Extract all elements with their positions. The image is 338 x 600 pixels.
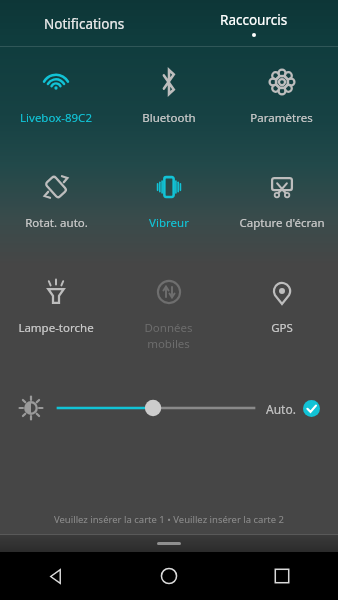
button[interactable]: GPS — [225, 257, 338, 362]
button[interactable]: Rotat. auto. — [0, 152, 112, 257]
button[interactable]: Bluetooth — [112, 47, 225, 152]
button[interactable]: Back — [0, 552, 112, 600]
button[interactable]: Notifications — [0, 0, 169, 47]
staticText: Rotat. auto. — [25, 215, 88, 231]
staticText: Bluetooth — [142, 110, 196, 126]
staticText: Auto. — [266, 401, 296, 417]
button[interactable]: Données mobiles — [112, 257, 225, 362]
staticText: Données mobiles — [144, 320, 193, 351]
staticText: Livebox-89C2 — [20, 110, 92, 126]
button[interactable]: Capture d'écran — [225, 152, 338, 257]
button[interactable]: Home — [112, 552, 225, 600]
staticText: Paramètres — [250, 110, 313, 126]
staticText: Raccourcis — [220, 11, 288, 29]
staticText: Veuillez insérer la carte 1 • Veuillez i… — [54, 513, 285, 526]
button[interactable]: Livebox-89C2 — [0, 47, 112, 152]
staticText: Vibreur — [149, 215, 189, 231]
button[interactable]: Auto. — [266, 400, 320, 417]
button[interactable]: Paramètres — [225, 47, 338, 152]
button[interactable]: Raccourcis — [169, 0, 338, 47]
button[interactable]: Recent apps — [225, 552, 338, 600]
button[interactable]: Lampe-torche — [0, 257, 112, 362]
staticText: Capture d'écran — [239, 215, 325, 231]
button[interactable]: Collapse panel — [0, 535, 338, 552]
button[interactable] — [58, 388, 254, 428]
other: Brightness — [18, 395, 44, 421]
staticText: Notifications — [44, 15, 125, 33]
button[interactable]: Vibreur — [112, 152, 225, 257]
staticText: Lampe-torche — [18, 320, 94, 336]
staticText: GPS — [271, 320, 293, 336]
